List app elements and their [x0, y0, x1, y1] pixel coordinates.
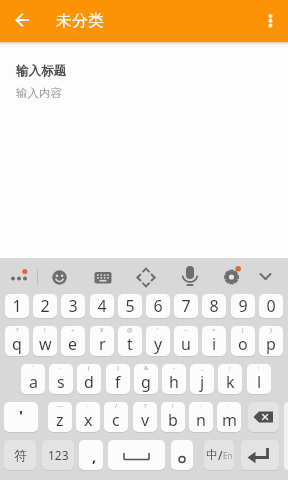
staticText: ' — [19, 405, 23, 425]
button[interactable]: 1 — [5, 294, 29, 318]
staticText: 中 — [206, 447, 218, 462]
staticText: e — [68, 333, 78, 355]
staticText: : — [258, 364, 260, 372]
button[interactable] — [254, 264, 278, 288]
button[interactable]: - — [162, 364, 186, 394]
button[interactable]: · — [189, 402, 213, 432]
staticText: ; — [229, 364, 231, 372]
staticText: 5 — [125, 295, 135, 317]
staticText: y — [154, 333, 163, 355]
button[interactable] — [46, 264, 73, 291]
button[interactable]: 4 — [90, 294, 114, 318]
staticText: d — [84, 371, 94, 393]
button[interactable] — [176, 262, 204, 291]
button[interactable]: ' — [4, 402, 38, 432]
button[interactable]: ; — [218, 364, 242, 394]
button[interactable] — [248, 402, 279, 432]
staticText: 0 — [266, 295, 276, 317]
button[interactable]: ? — [133, 402, 157, 432]
staticText: ) — [270, 326, 272, 334]
button[interactable]: : — [247, 364, 271, 394]
button[interactable]: ) — [259, 326, 283, 356]
button[interactable]: ' — [146, 326, 170, 356]
button[interactable]: ¥ — [90, 326, 114, 356]
staticText: 未分类 — [56, 11, 104, 31]
staticText: - — [173, 364, 175, 372]
staticText: , — [92, 446, 97, 466]
staticText: w — [39, 333, 52, 355]
button[interactable]: ) — [106, 364, 130, 394]
button[interactable]: 123 — [42, 440, 74, 470]
button[interactable] — [89, 264, 116, 291]
staticText: 123 — [48, 447, 69, 463]
button[interactable]: ! — [161, 402, 185, 432]
button[interactable]: · — [217, 402, 241, 432]
button[interactable]: ` — [21, 364, 45, 394]
staticText: 7 — [181, 295, 191, 317]
staticText: 符 — [14, 447, 27, 463]
staticText: ' — [157, 326, 159, 334]
button[interactable]: · — [49, 364, 73, 394]
button[interactable] — [132, 264, 160, 291]
button[interactable]: = — [202, 326, 226, 356]
staticText: q — [12, 333, 22, 355]
staticText: p — [266, 333, 276, 355]
staticText: / — [218, 447, 223, 463]
staticText: ( — [242, 326, 244, 334]
staticText: f — [115, 371, 121, 393]
button[interactable]: / — [104, 402, 128, 432]
staticText: — — [57, 402, 64, 410]
staticText: @ — [127, 326, 133, 334]
button[interactable]: , — [79, 440, 103, 470]
button[interactable]: 中 — [204, 440, 234, 470]
button[interactable]: ~ — [174, 326, 198, 356]
staticText: ` — [32, 364, 34, 372]
staticText: & — [144, 364, 149, 372]
button[interactable]: 3 — [61, 294, 85, 318]
button[interactable]: 0 — [259, 294, 283, 318]
staticText: b — [168, 409, 178, 431]
button[interactable] — [218, 262, 248, 291]
button[interactable]: 9 — [231, 294, 255, 318]
button[interactable]: _ — [190, 364, 214, 394]
button[interactable] — [241, 440, 279, 470]
button[interactable]: & — [134, 364, 158, 394]
button[interactable]: ! — [33, 326, 57, 356]
button[interactable]: 7 — [174, 294, 198, 318]
staticText: c — [112, 409, 120, 431]
button[interactable]: 5 — [118, 294, 142, 318]
button[interactable] — [256, 6, 284, 34]
staticText: ¥ — [100, 326, 104, 334]
staticText: x — [84, 409, 93, 431]
button[interactable]: ( — [231, 326, 255, 356]
staticText: s — [57, 371, 65, 393]
button[interactable] — [108, 440, 165, 470]
staticText: r — [99, 333, 106, 355]
staticText: ? — [144, 402, 147, 410]
button[interactable] — [8, 6, 36, 34]
staticText: o — [238, 333, 248, 355]
staticText: · — [200, 402, 202, 410]
button[interactable]: @ — [118, 326, 142, 356]
staticText: l — [257, 371, 262, 393]
button[interactable]: — — [48, 402, 72, 432]
staticText: · — [228, 402, 230, 410]
button[interactable]: 6 — [146, 294, 170, 318]
staticText: 9 — [238, 295, 248, 317]
button[interactable]: 符 — [4, 440, 36, 470]
button[interactable]: ? — [5, 326, 29, 356]
staticText: g — [141, 371, 151, 393]
button[interactable]: · — [76, 402, 100, 432]
button[interactable]: 2 — [33, 294, 57, 318]
staticText: v — [141, 409, 150, 431]
staticText: k — [226, 371, 235, 393]
button[interactable]: 8 — [202, 294, 226, 318]
button[interactable] — [6, 264, 34, 288]
button[interactable]: ÷ — [61, 326, 85, 356]
staticText: ) — [117, 364, 119, 372]
button[interactable]: ( — [77, 364, 101, 394]
button[interactable] — [171, 440, 193, 470]
staticText: 2 — [40, 295, 50, 317]
staticText: j — [200, 371, 205, 393]
staticText: a — [29, 371, 38, 393]
